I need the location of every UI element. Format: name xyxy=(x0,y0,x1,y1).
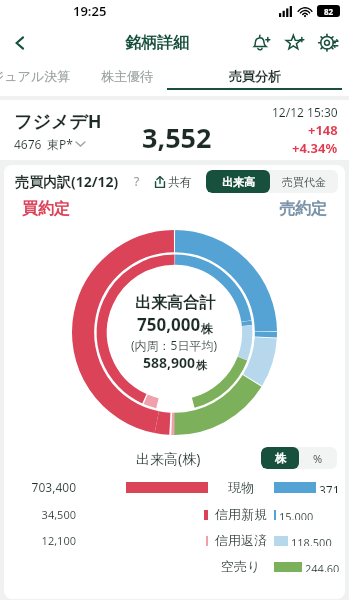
staticText: 12/12 15:30 xyxy=(272,104,338,120)
staticText: 703,400 xyxy=(4,479,76,495)
button[interactable]: 売買分析 xyxy=(160,64,349,90)
button[interactable]: ジュアル決算 xyxy=(0,64,78,88)
staticText: 株 xyxy=(201,321,213,336)
button[interactable]: Add favorite xyxy=(277,26,311,60)
staticText: 売買分析 xyxy=(229,68,281,84)
button[interactable]: 共有 xyxy=(152,172,194,191)
staticText: (内周：5日平均) xyxy=(131,337,218,353)
staticText: 現物 xyxy=(228,479,254,495)
staticText: 19:25 xyxy=(73,2,107,20)
staticText: 750,000 xyxy=(137,313,201,336)
staticText: 株 xyxy=(196,358,207,372)
staticText: % xyxy=(313,451,323,466)
staticText: 売買内訳(12/12) xyxy=(15,172,119,191)
staticText: 売買代金 xyxy=(282,175,326,189)
staticText: 15,000 xyxy=(279,509,314,520)
staticText: 3,552 xyxy=(142,119,212,156)
staticText: 出来高合計 xyxy=(135,293,215,313)
staticText: 12,100 xyxy=(4,533,76,548)
staticText: 244,600 xyxy=(305,561,345,572)
staticText: 588,900 xyxy=(143,353,196,372)
staticText: 株 xyxy=(275,451,286,465)
button[interactable]: 売買代金 xyxy=(270,170,338,193)
button[interactable]: Help xyxy=(129,173,145,189)
staticText: 共有 xyxy=(168,174,192,189)
staticText: 東P* xyxy=(47,136,73,152)
staticText: +4.34% xyxy=(292,139,338,157)
button[interactable]: Back xyxy=(0,23,40,63)
staticText: ジュアル決算 xyxy=(0,68,71,84)
button[interactable]: 株主優待 xyxy=(94,64,160,88)
staticText: フジメデH xyxy=(14,109,102,134)
staticText: 34,500 xyxy=(4,507,76,522)
staticText: 出来高 xyxy=(222,175,255,189)
button[interactable]: 株 xyxy=(261,447,299,469)
staticText: 株主優待 xyxy=(101,68,153,84)
staticText: 371,900 xyxy=(319,482,345,493)
staticText: 信用新規 xyxy=(215,506,267,522)
staticText: 銘柄詳細 xyxy=(125,33,189,53)
staticText: 出来高(株) xyxy=(136,449,201,468)
button[interactable]: 出来高 xyxy=(206,170,270,193)
button[interactable]: % xyxy=(299,447,337,469)
staticText: 4676 xyxy=(14,136,42,152)
staticText: 82 xyxy=(324,6,334,17)
staticText: 118,500 xyxy=(291,535,332,546)
staticText: ? xyxy=(134,173,140,189)
button[interactable]: Add alert xyxy=(243,26,277,60)
staticText: 売約定 xyxy=(279,199,327,219)
staticText: 空売り xyxy=(221,558,261,574)
staticText: +148 xyxy=(308,121,338,139)
staticText: 買約定 xyxy=(22,199,70,219)
button[interactable]: Settings xyxy=(311,26,345,60)
staticText: 信用返済 xyxy=(215,532,267,548)
